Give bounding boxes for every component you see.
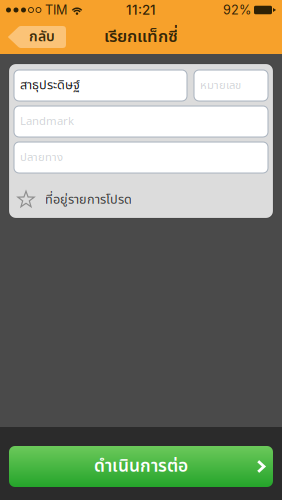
staticText: TIM <box>45 2 67 18</box>
button[interactable]: ปลายทาง <box>14 142 268 173</box>
staticText: กลับ <box>29 26 55 48</box>
staticText: Landmark <box>20 113 74 130</box>
staticText: 11:21 <box>126 2 156 18</box>
button[interactable]: หมายเลข <box>194 70 268 101</box>
button[interactable]: ที่อยู่รายการโปรด <box>14 178 268 216</box>
staticText: ดำเนินการต่อ <box>94 453 188 480</box>
staticText: เรียกแท็กซี่ <box>104 24 178 50</box>
staticText: ที่อยู่รายการโปรด <box>45 190 132 209</box>
staticText: ปลายทาง <box>20 149 63 166</box>
button[interactable]: กลับ <box>7 26 66 48</box>
button[interactable]: ดำเนินการต่อ <box>9 446 273 487</box>
button[interactable]: สาธุประดิษฐ์ <box>14 70 187 101</box>
staticText: 92% <box>223 2 251 18</box>
staticText: หมายเลข <box>200 77 241 94</box>
staticText: สาธุประดิษฐ์ <box>20 76 80 95</box>
button[interactable]: Landmark <box>14 106 268 137</box>
